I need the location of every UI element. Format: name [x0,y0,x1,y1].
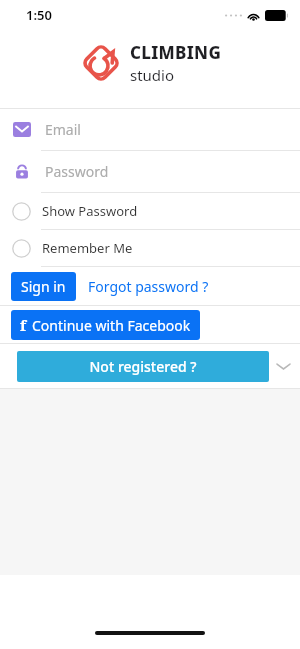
button[interactable]: Remember Me [0,230,300,266]
button[interactable]: Password [0,151,300,192]
button[interactable]: Sign in [11,272,76,301]
staticText: studio [130,65,175,85]
button[interactable]: Show Password [0,193,300,229]
staticText: Email [45,120,81,139]
staticText: CLIMBING [130,41,222,64]
staticText: Show Password [42,202,138,220]
staticText: 1:50 [26,6,52,24]
staticText: Not registered ? [89,357,197,376]
button[interactable]: Email [0,109,300,150]
staticText: Password [45,162,109,181]
staticText: f [20,315,27,335]
button[interactable]: Not registered ? [17,351,269,382]
button[interactable]: Expand registration options [269,351,297,382]
button[interactable]: Forgot password ? [87,272,210,301]
staticText: Sign in [21,277,66,296]
button[interactable]: f [11,310,200,340]
staticText: Remember Me [42,239,133,257]
staticText: Forgot password ? [88,277,209,296]
staticText: Continue with Facebook [32,316,191,335]
